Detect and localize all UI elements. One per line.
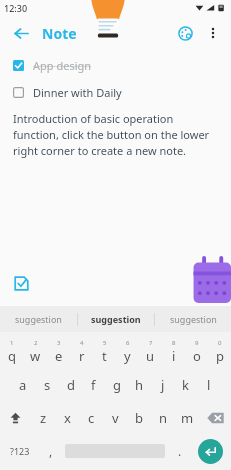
staticText: t <box>102 347 107 365</box>
button[interactable]: . <box>169 434 190 468</box>
staticText: 0 <box>218 339 222 347</box>
staticText: a <box>19 376 27 394</box>
button[interactable]: ?123 <box>0 434 40 468</box>
button[interactable]: b <box>127 401 151 434</box>
button[interactable]: Enter <box>198 439 223 464</box>
staticText: r <box>79 347 85 365</box>
button[interactable]: k <box>174 368 197 401</box>
staticText: v <box>112 409 119 427</box>
staticText: App design <box>33 58 92 73</box>
staticText: 9 <box>195 339 199 347</box>
button[interactable]: 2 <box>24 335 47 368</box>
staticText: b <box>135 409 143 427</box>
staticText: ?123 <box>10 445 30 457</box>
button[interactable]: 8 <box>162 335 185 368</box>
button[interactable]: suggestion <box>155 306 231 332</box>
button[interactable]: suggestion <box>78 306 154 332</box>
button[interactable]: f <box>82 368 105 401</box>
button[interactable]: n <box>151 401 175 434</box>
button[interactable]: 0 <box>208 335 231 368</box>
button[interactable]: s <box>35 368 59 401</box>
staticText: p <box>216 347 224 365</box>
staticText: w <box>30 347 41 365</box>
staticText: 5 <box>103 339 107 347</box>
staticText: q <box>8 347 16 365</box>
staticText: u <box>146 347 155 365</box>
staticText: 12:30 <box>4 2 28 14</box>
staticText: Introduction of basic operation function… <box>13 111 218 158</box>
staticText: h <box>135 376 144 394</box>
button[interactable]: 4 <box>70 335 93 368</box>
staticText: g <box>113 376 121 394</box>
staticText: 2 <box>34 339 38 347</box>
button[interactable]: g <box>105 368 128 401</box>
staticText: s <box>44 376 51 394</box>
staticText: n <box>159 409 168 427</box>
staticText: . <box>178 443 182 459</box>
staticText: suggestion <box>91 313 141 325</box>
button[interactable]: m <box>175 401 199 434</box>
staticText: suggestion <box>170 313 217 325</box>
staticText: 4 <box>80 339 84 347</box>
button[interactable]: 1 <box>0 335 24 368</box>
button[interactable]: l <box>197 368 220 401</box>
staticText: k <box>182 376 189 394</box>
staticText: Note <box>42 24 77 43</box>
button[interactable]: h <box>128 368 151 401</box>
staticText: d <box>67 376 75 394</box>
button[interactable]: j <box>151 368 174 401</box>
button[interactable]: x <box>55 401 79 434</box>
button[interactable]: 3 <box>47 335 70 368</box>
button[interactable]: More options <box>200 20 226 46</box>
staticText: y <box>124 347 131 365</box>
button[interactable]: New checklist <box>10 272 32 294</box>
staticText: , <box>49 443 53 459</box>
button[interactable]: 7 <box>139 335 162 368</box>
button[interactable]: v <box>103 401 127 434</box>
staticText: f <box>91 376 96 394</box>
staticText: l <box>207 376 211 394</box>
staticText: 3 <box>57 339 61 347</box>
staticText: o <box>193 347 201 365</box>
button[interactable]: App design <box>0 54 231 76</box>
staticText: 6 <box>126 339 130 347</box>
staticText: 7 <box>149 339 153 347</box>
button[interactable]: d <box>59 368 82 401</box>
button[interactable]: Dinner with Daily <box>0 81 231 103</box>
button[interactable]: Shift <box>0 401 31 434</box>
button[interactable]: Backspace <box>199 401 231 434</box>
staticText: i <box>172 347 176 365</box>
staticText: suggestion <box>15 313 62 325</box>
staticText: Dinner with Daily <box>33 85 122 100</box>
button[interactable]: 6 <box>116 335 139 368</box>
staticText: z <box>40 409 47 427</box>
button[interactable]: 5 <box>93 335 116 368</box>
button[interactable]: Change colour <box>171 19 199 47</box>
staticText: e <box>55 347 63 365</box>
staticText: 8 <box>172 339 176 347</box>
staticText: m <box>181 409 194 427</box>
button[interactable]: a <box>11 368 35 401</box>
staticText: j <box>161 376 165 394</box>
button[interactable]: c <box>79 401 103 434</box>
staticText: x <box>64 409 71 427</box>
button[interactable]: Back <box>6 18 36 48</box>
button[interactable]: 9 <box>185 335 208 368</box>
button[interactable]: , <box>40 434 61 468</box>
staticText: 1 <box>10 339 14 347</box>
staticText: c <box>88 409 95 427</box>
button[interactable]: suggestion <box>0 306 77 332</box>
button[interactable]: z <box>31 401 55 434</box>
